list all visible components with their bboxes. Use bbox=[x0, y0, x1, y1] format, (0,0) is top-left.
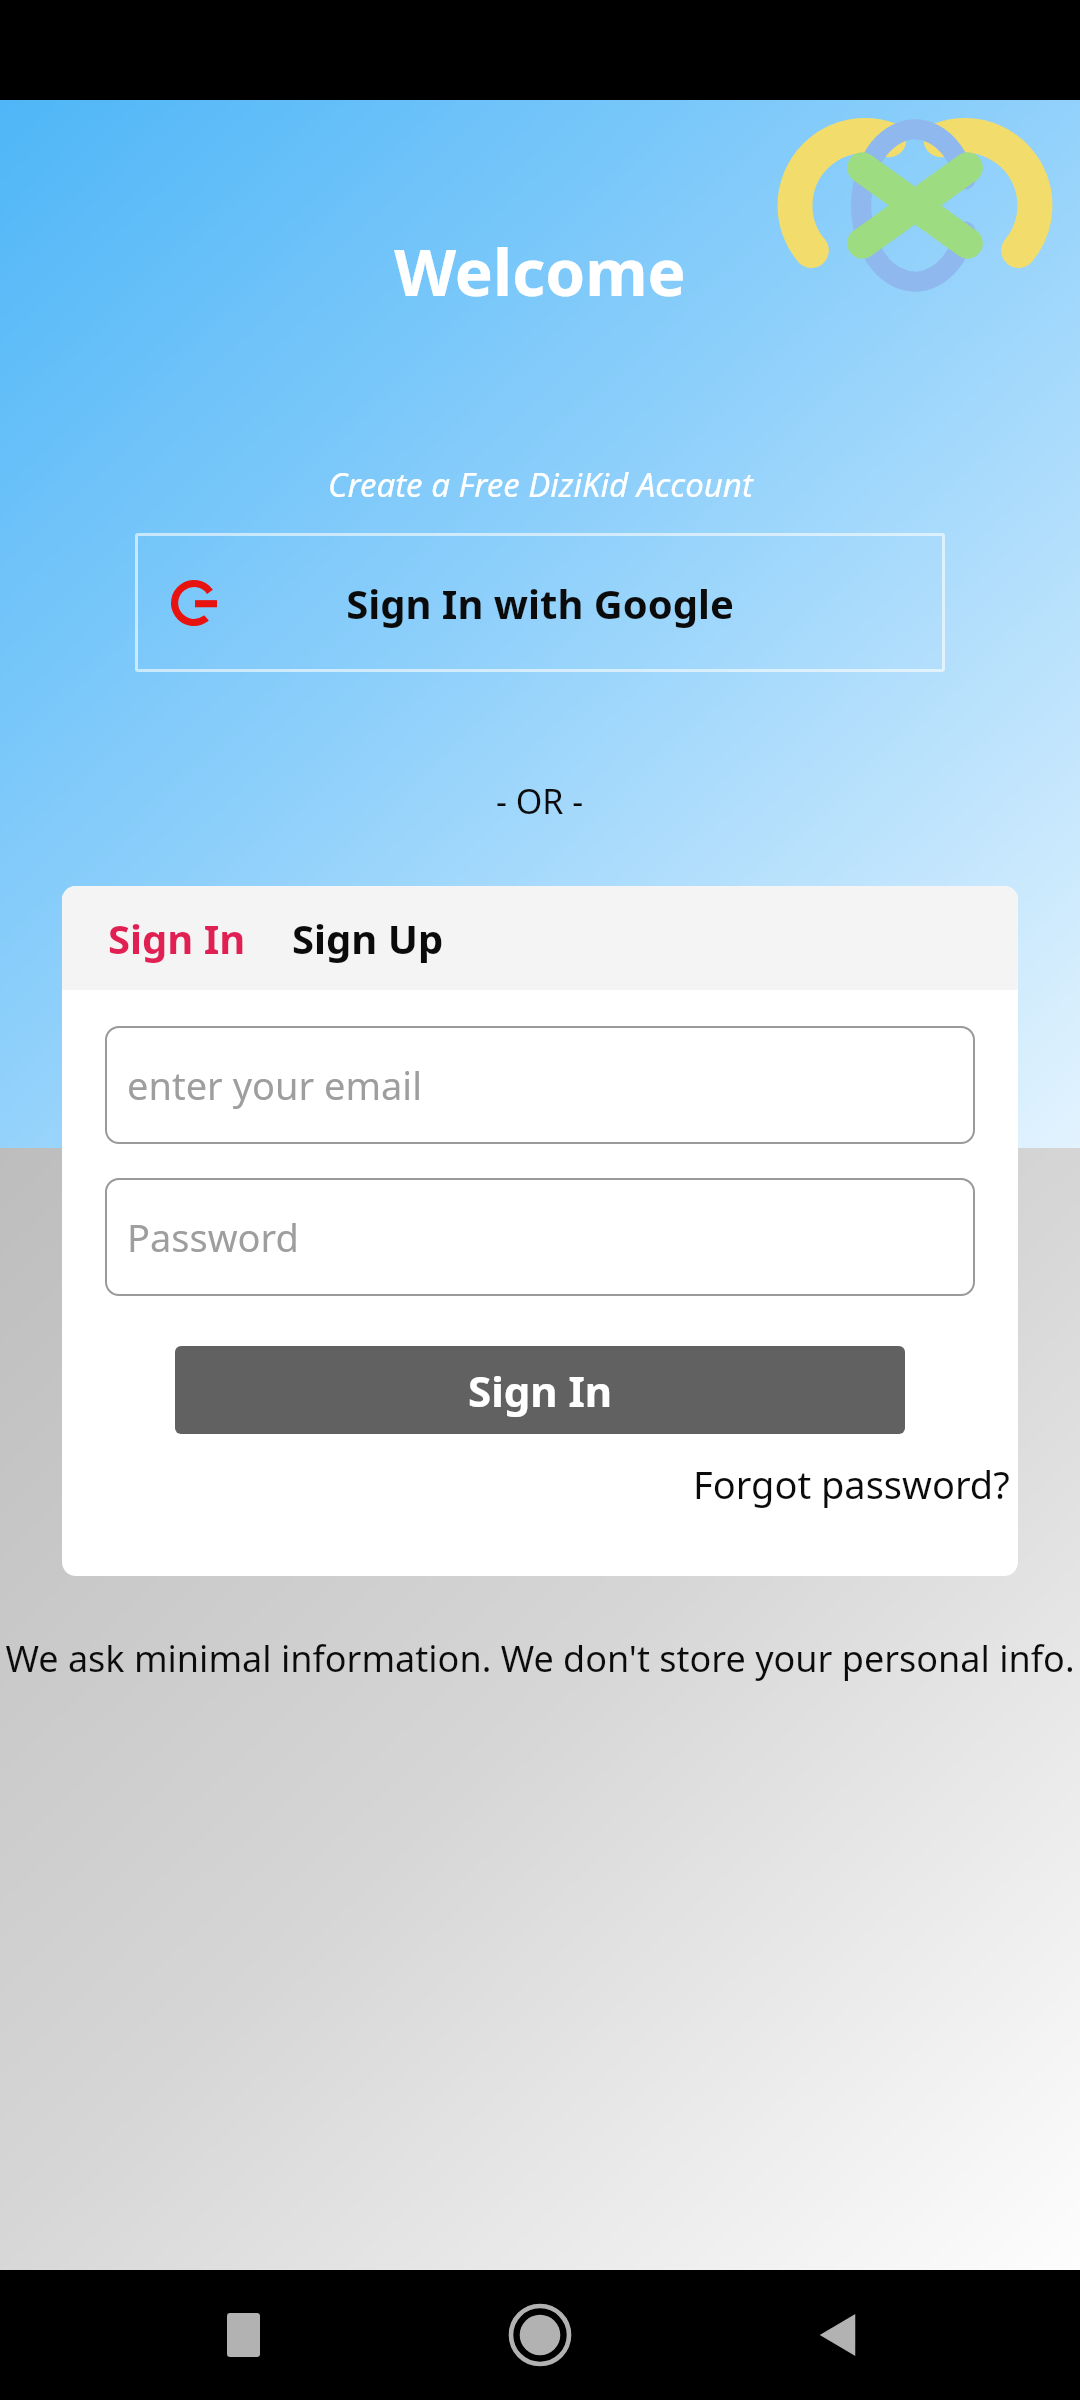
button[interactable]: Back bbox=[783, 2280, 893, 2390]
staticText: Sign In with Google bbox=[346, 576, 734, 630]
button[interactable]: enter your email bbox=[105, 1026, 975, 1144]
staticText: Sign In bbox=[468, 1362, 613, 1419]
staticText: enter your email bbox=[127, 1059, 422, 1111]
staticText: Sign In bbox=[108, 911, 246, 965]
staticText: Create a Free DiziKid Account bbox=[328, 462, 753, 507]
staticText: Welcome bbox=[394, 228, 686, 315]
button[interactable]: Password bbox=[105, 1178, 975, 1296]
button[interactable]: Sign In with Google bbox=[135, 533, 945, 672]
staticText: - OR - bbox=[496, 778, 584, 824]
button[interactable]: Home bbox=[485, 2280, 595, 2390]
staticText: We ask minimal information. We don't sto… bbox=[5, 1634, 1075, 1683]
button[interactable]: Sign Up bbox=[288, 901, 448, 975]
button[interactable]: Recent apps bbox=[188, 2280, 298, 2390]
button[interactable]: Sign In bbox=[104, 901, 250, 975]
button[interactable]: Forgot password? bbox=[693, 1454, 1018, 1514]
other: DiziKid logo bbox=[790, 118, 1040, 293]
button[interactable]: Sign In bbox=[175, 1346, 905, 1434]
staticText: Forgot password? bbox=[693, 1458, 1010, 1510]
staticText: Password bbox=[127, 1211, 299, 1263]
staticText: Sign Up bbox=[292, 911, 444, 965]
